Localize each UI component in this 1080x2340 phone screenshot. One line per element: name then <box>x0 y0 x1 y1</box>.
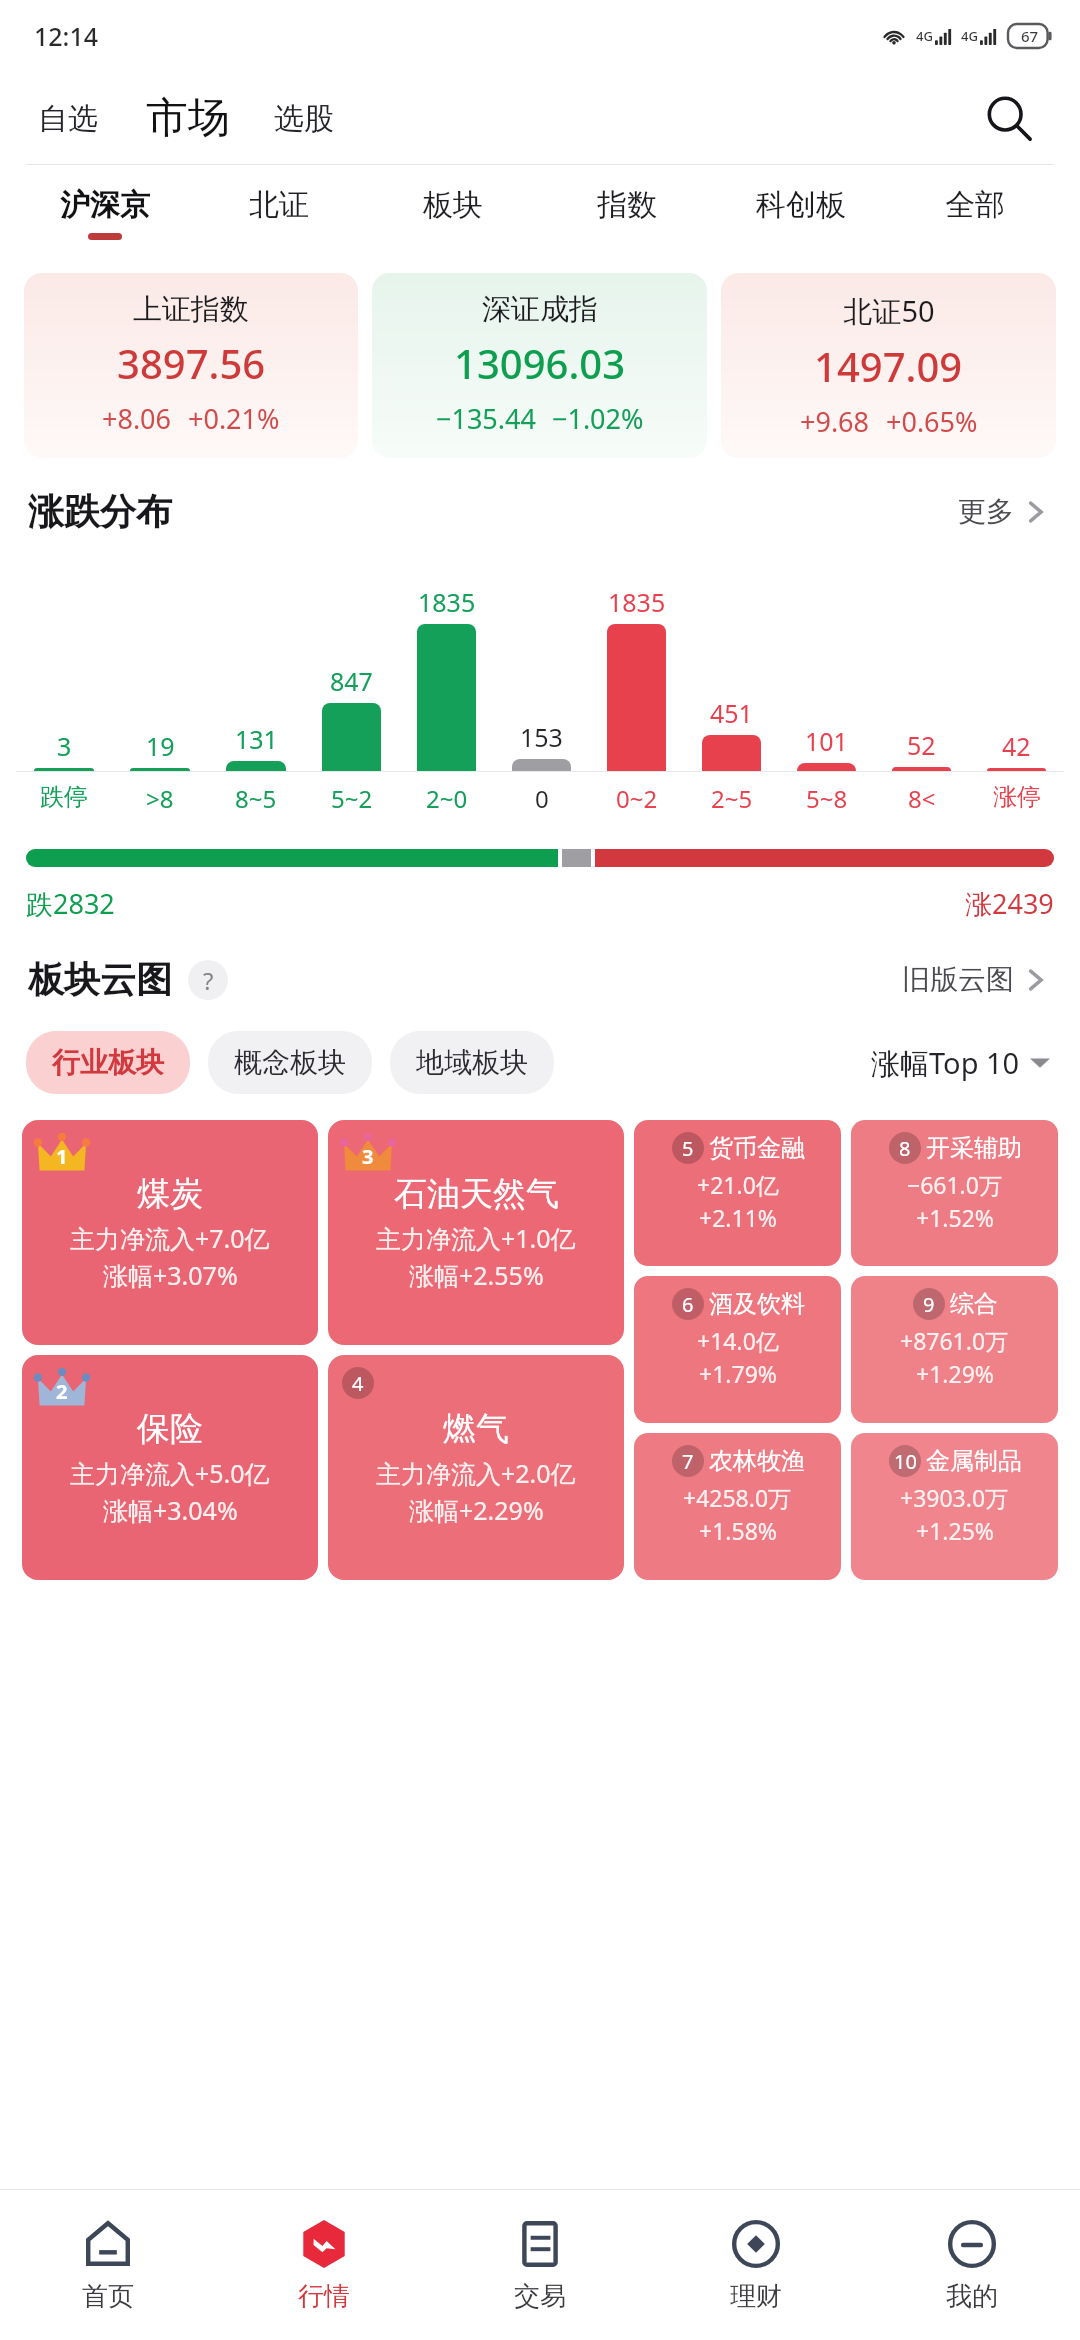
staticText: 酒及饮料 <box>709 1289 805 1319</box>
staticText: ? <box>203 964 214 997</box>
staticText: 地域板块 <box>416 1045 528 1080</box>
staticText: +0.65% <box>886 403 978 440</box>
staticText: 7 <box>682 1448 694 1475</box>
staticText: 10 <box>894 1448 917 1475</box>
staticText: 涨幅+3.07% <box>103 1258 238 1292</box>
staticText: 跌停 <box>40 782 88 812</box>
staticText: +1.79% <box>699 1358 777 1389</box>
staticText: 涨2439 <box>965 885 1054 922</box>
button[interactable]: 保险 <box>22 1355 318 1580</box>
staticText: 67 <box>1021 26 1039 46</box>
staticText: 涨幅Top 10 <box>871 1043 1020 1083</box>
staticText: +3903.0万 <box>900 1482 1009 1513</box>
button[interactable]: 北证50 <box>721 273 1056 458</box>
staticText: 指数 <box>597 186 657 224</box>
staticText: 131 <box>235 722 278 756</box>
staticText: 沪深京 <box>60 186 150 224</box>
button[interactable]: 全部 <box>888 165 1062 261</box>
staticText: +2.11% <box>699 1202 777 1233</box>
button[interactable]: Help <box>188 960 228 1000</box>
staticText: 主力净流入+7.0亿 <box>70 1221 270 1255</box>
staticText: 9 <box>923 1291 935 1318</box>
staticText: 行业板块 <box>52 1045 164 1080</box>
staticText: 概念板块 <box>234 1045 346 1080</box>
button[interactable]: 深证成指 <box>372 273 707 458</box>
staticText: −135.44 <box>436 400 536 437</box>
staticText: 1 <box>56 1143 68 1170</box>
staticText: +8761.0万 <box>900 1325 1009 1356</box>
button[interactable]: 燃气 <box>328 1355 624 1580</box>
staticText: +21.0亿 <box>697 1169 779 1200</box>
staticText: 主力净流入+2.0亿 <box>376 1456 576 1490</box>
button[interactable]: 交易 <box>432 2190 648 2340</box>
button[interactable]: 市场 <box>142 88 234 149</box>
staticText: 2~5 <box>711 782 753 815</box>
button[interactable]: 首页 <box>0 2190 216 2340</box>
staticText: 153 <box>520 720 563 754</box>
staticText: 科创板 <box>756 186 846 224</box>
staticText: 5~8 <box>806 782 848 815</box>
staticText: 19 <box>146 729 175 763</box>
staticText: 2~0 <box>426 782 468 815</box>
staticText: 2 <box>56 1378 68 1405</box>
staticText: 3 <box>362 1143 374 1170</box>
staticText: 主力净流入+5.0亿 <box>70 1456 270 1490</box>
button[interactable]: 上证指数 <box>24 273 358 458</box>
button[interactable]: 我的 <box>864 2190 1080 2340</box>
button[interactable]: 地域板块 <box>390 1031 554 1094</box>
staticText: 1835 <box>418 585 476 619</box>
staticText: +0.21% <box>188 400 280 437</box>
staticText: −1.02% <box>552 400 644 437</box>
button[interactable]: 科创板 <box>714 165 888 261</box>
staticText: 8~5 <box>235 782 277 815</box>
button[interactable]: 概念板块 <box>208 1031 372 1094</box>
staticText: 3897.56 <box>117 336 266 390</box>
button[interactable]: 板块 <box>366 165 540 261</box>
staticText: 我的 <box>946 2280 998 2313</box>
staticText: 0 <box>535 782 549 815</box>
staticText: +9.68 <box>800 403 870 440</box>
button[interactable]: 9 <box>851 1276 1058 1423</box>
staticText: 市场 <box>146 92 230 145</box>
staticText: >8 <box>146 782 174 815</box>
staticText: 开采辅助 <box>926 1133 1022 1163</box>
button[interactable]: Search <box>978 87 1040 149</box>
staticText: 农林牧渔 <box>709 1446 805 1476</box>
staticText: 8< <box>908 782 936 815</box>
button[interactable]: 理财 <box>648 2190 864 2340</box>
button[interactable]: 旧版云图 <box>896 956 1052 1003</box>
staticText: +1.58% <box>699 1515 777 1546</box>
staticText: −661.0万 <box>907 1169 1002 1200</box>
button[interactable]: 沪深京 <box>18 165 192 261</box>
button[interactable]: 石油天然气 <box>328 1120 624 1345</box>
staticText: 4G <box>916 27 933 45</box>
staticText: 首页 <box>82 2280 134 2313</box>
button[interactable]: 10 <box>851 1433 1058 1580</box>
staticText: 847 <box>330 664 373 698</box>
staticText: 综合 <box>950 1289 998 1319</box>
button[interactable]: 指数 <box>540 165 714 261</box>
staticText: 涨幅+2.55% <box>409 1258 544 1292</box>
button[interactable]: 煤炭 <box>22 1120 318 1345</box>
staticText: 上证指数 <box>133 291 249 328</box>
staticText: 选股 <box>274 100 334 138</box>
button[interactable]: 涨幅Top 10 <box>867 1039 1054 1087</box>
staticText: 北证50 <box>843 291 935 331</box>
button[interactable]: 选股 <box>270 92 338 146</box>
button[interactable]: 自选 <box>34 92 102 146</box>
button[interactable]: 北证 <box>192 165 366 261</box>
button[interactable]: 6 <box>634 1276 841 1423</box>
staticText: 1497.09 <box>814 339 963 393</box>
button[interactable]: 8 <box>851 1120 1058 1266</box>
button[interactable]: 更多 <box>952 488 1052 535</box>
staticText: 涨停 <box>993 782 1041 812</box>
button[interactable]: 行业板块 <box>26 1031 190 1094</box>
staticText: 451 <box>710 696 753 730</box>
button[interactable]: 7 <box>634 1433 841 1580</box>
staticText: 涨幅+2.29% <box>409 1493 544 1527</box>
button[interactable]: 5 <box>634 1120 841 1266</box>
staticText: 8 <box>899 1135 911 1162</box>
staticText: 101 <box>805 724 848 758</box>
button[interactable]: 行情 <box>216 2190 432 2340</box>
staticText: +14.0亿 <box>697 1325 779 1356</box>
